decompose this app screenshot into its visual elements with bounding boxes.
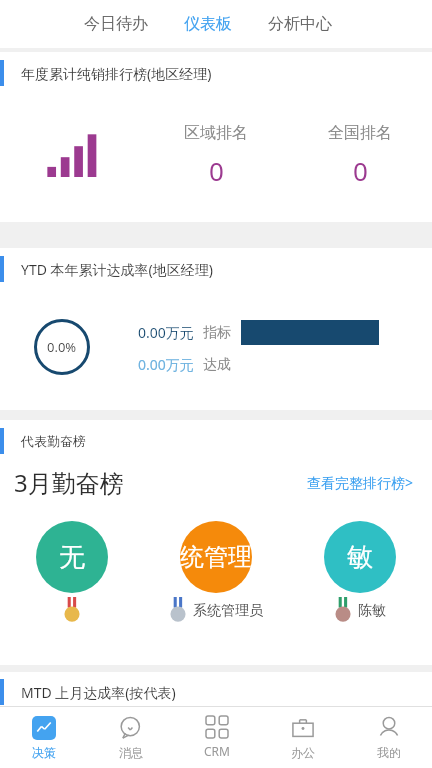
staticText: 分析中心 bbox=[268, 14, 332, 34]
button[interactable]: 区域排名 bbox=[144, 123, 288, 188]
button[interactable]: 消息 bbox=[87, 707, 174, 768]
staticText: 陈敏 bbox=[358, 602, 386, 620]
button[interactable]: MTD 上月达成率(按代表) bbox=[0, 672, 432, 706]
other: 我的 bbox=[377, 716, 401, 740]
staticText: 查看完整排行榜> bbox=[307, 473, 414, 492]
staticText: 仪表板 bbox=[184, 14, 232, 34]
staticText: 办公 bbox=[291, 745, 315, 760]
button[interactable]: 统管理 bbox=[144, 521, 288, 625]
staticText: 系统管理员 bbox=[193, 602, 263, 620]
staticText: 代表勤奋榜 bbox=[21, 433, 86, 449]
staticText: 决策 bbox=[32, 745, 56, 760]
staticText: CRM bbox=[204, 743, 230, 759]
staticText: 达成 bbox=[203, 356, 231, 374]
other: Rank 2 medal bbox=[169, 597, 187, 625]
button[interactable]: 年度累计纯销排行榜(地区经理) bbox=[0, 52, 432, 222]
button[interactable]: 今日待办 bbox=[82, 8, 150, 40]
staticText: 我的 bbox=[377, 745, 401, 760]
button[interactable]: YTD 本年累计达成率(地区经理) bbox=[0, 248, 432, 410]
staticText: 今日待办 bbox=[84, 14, 148, 34]
other: Rank 1 medal bbox=[63, 597, 81, 625]
staticText: 无 bbox=[59, 541, 85, 574]
other: Rank 3 medal bbox=[334, 597, 352, 625]
button[interactable]: 办公 bbox=[260, 707, 346, 768]
button[interactable]: 分析中心 bbox=[266, 8, 334, 40]
staticText: 指标 bbox=[203, 324, 231, 342]
staticText: 0.00万元 bbox=[138, 323, 194, 342]
other: 决策 bbox=[32, 716, 56, 740]
staticText: 0 bbox=[209, 153, 224, 188]
staticText: 区域排名 bbox=[184, 123, 248, 143]
staticText: 3月勤奋榜 bbox=[14, 466, 124, 499]
other: CRM bbox=[206, 716, 228, 738]
button[interactable]: 敏 bbox=[288, 521, 432, 625]
button[interactable]: 无 bbox=[0, 521, 144, 625]
staticText: YTD 本年累计达成率(地区经理) bbox=[21, 260, 213, 279]
staticText: 0 bbox=[353, 153, 368, 188]
button[interactable]: CRM bbox=[174, 707, 260, 768]
button[interactable]: 我的 bbox=[346, 707, 432, 768]
other: 办公 bbox=[291, 716, 315, 740]
other: 消息 bbox=[119, 716, 143, 740]
staticText: 全国排名 bbox=[328, 123, 392, 143]
staticText: 年度累计纯销排行榜(地区经理) bbox=[21, 64, 212, 83]
staticText: 消息 bbox=[119, 745, 143, 760]
staticText: 0.0% bbox=[47, 338, 77, 356]
button[interactable]: 决策 bbox=[0, 707, 87, 768]
button[interactable]: 仪表板 bbox=[182, 8, 234, 40]
button[interactable]: 全国排名 bbox=[288, 123, 432, 188]
button[interactable]: 查看完整排行榜> bbox=[303, 469, 418, 496]
staticText: 敏 bbox=[347, 541, 373, 574]
staticText: MTD 上月达成率(按代表) bbox=[21, 683, 176, 702]
staticText: 0.00万元 bbox=[138, 355, 194, 374]
staticText: 统管理 bbox=[180, 542, 252, 572]
